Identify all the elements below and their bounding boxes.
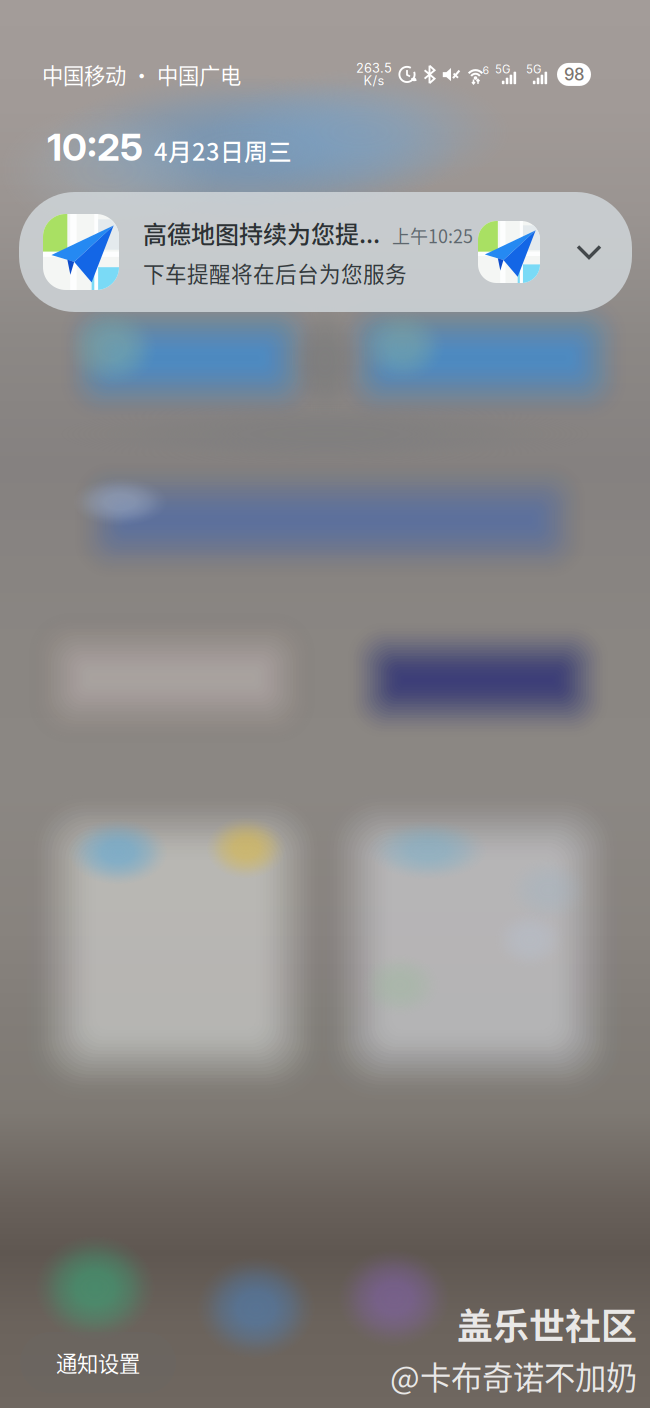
staticText: 6	[482, 64, 489, 77]
staticText: 10:25	[47, 124, 143, 170]
staticText: 通知设置	[56, 1347, 140, 1378]
staticText: 263.5	[356, 60, 392, 76]
staticText: 上午10:25	[392, 222, 473, 248]
staticText: 盖乐世社区	[457, 1298, 637, 1350]
staticText: 高德地图持续为您提...	[143, 215, 380, 250]
staticText: 4月23日周三	[154, 133, 292, 168]
button[interactable]: 高德地图持续为您提...	[19, 192, 632, 312]
staticText: @卡布奇诺不加奶	[390, 1353, 637, 1398]
staticText: 98	[564, 64, 584, 85]
staticText: 5G	[495, 63, 510, 76]
staticText: K/s	[363, 73, 384, 88]
staticText: 下车提醒将在后台为您服务	[143, 257, 407, 288]
button[interactable]: 通知设置	[20, 1332, 176, 1393]
staticText: 5G	[526, 63, 541, 76]
staticText: 中国移动 · 中国广电	[42, 59, 241, 90]
